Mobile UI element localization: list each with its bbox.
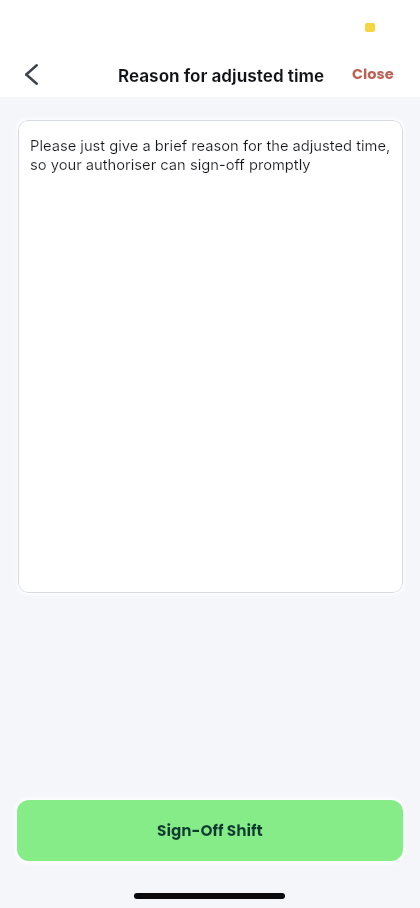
button[interactable]: Close (338, 52, 408, 96)
button[interactable]: Sign-Off Shift (17, 800, 403, 861)
button[interactable]: Back (8, 51, 55, 98)
button[interactable]: Reason text field (18, 120, 403, 593)
staticText: Close (352, 64, 394, 84)
staticText: Please just give a brief reason for the … (30, 137, 393, 173)
staticText: Sign-Off Shift (157, 820, 263, 841)
staticText: Reason for adjusted time (118, 66, 325, 87)
